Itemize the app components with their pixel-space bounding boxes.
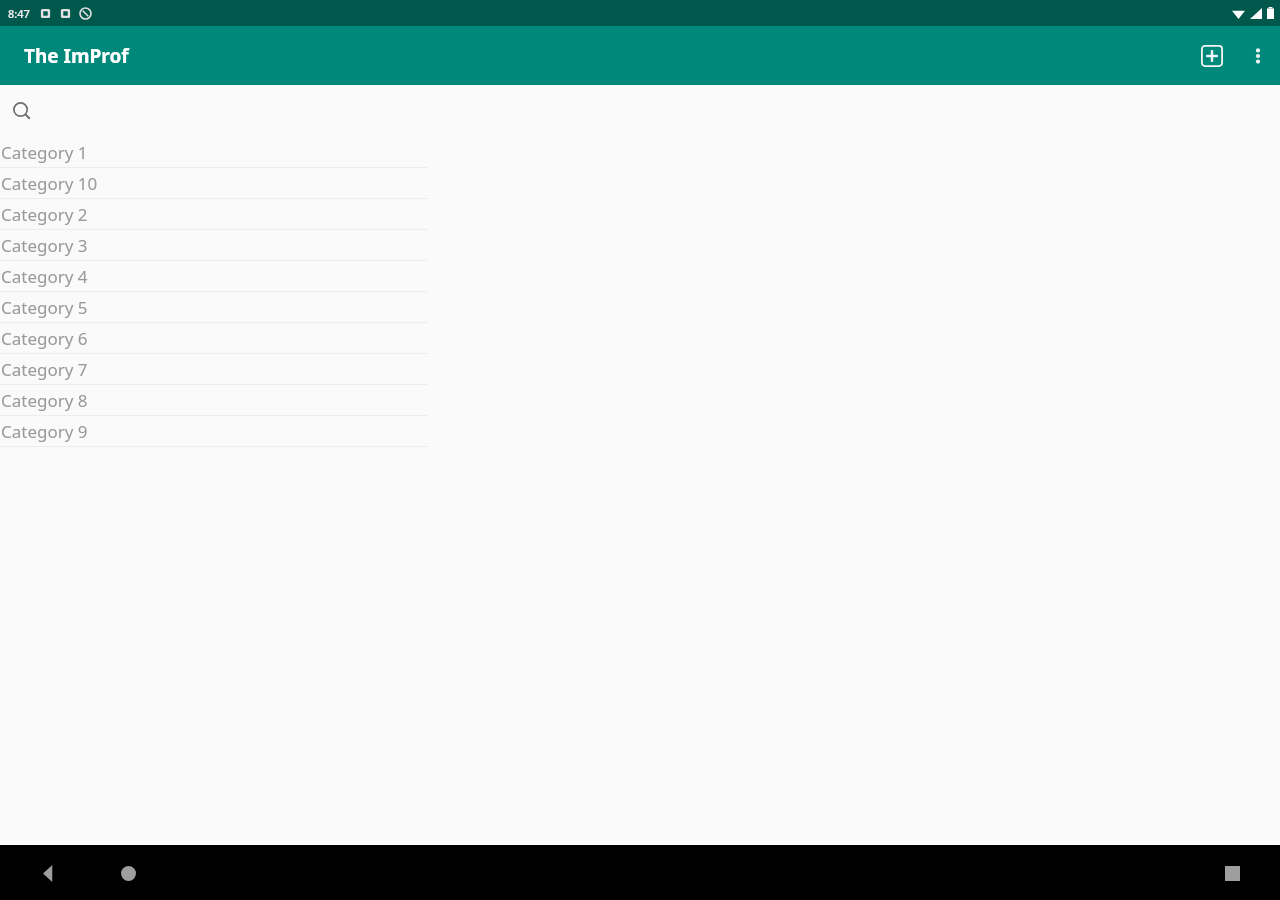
button[interactable]: Category 3	[0, 230, 1280, 261]
staticText: Category 4	[1, 265, 88, 288]
button[interactable]: Category 2	[0, 199, 1280, 230]
button[interactable]: Category 9	[0, 416, 1280, 447]
staticText: Category 8	[1, 389, 88, 412]
staticText: Category 3	[1, 234, 88, 257]
button[interactable]: More options	[1236, 34, 1280, 78]
staticText: Category 10	[1, 172, 98, 195]
button[interactable]: Back	[24, 849, 72, 897]
staticText: Category 2	[1, 203, 88, 226]
button[interactable]: Category 5	[0, 292, 1280, 323]
staticText: Category 1	[1, 141, 88, 164]
button[interactable]: Category 8	[0, 385, 1280, 416]
button[interactable]: Add category	[1188, 32, 1236, 80]
button[interactable]: Category 7	[0, 354, 1280, 385]
button[interactable]: Category 1	[0, 137, 1280, 168]
staticText: The ImProf	[24, 43, 129, 69]
button[interactable]: Search	[0, 85, 1280, 137]
staticText: Category 9	[1, 420, 88, 443]
staticText: 8:47	[8, 6, 30, 21]
button[interactable]: Category 4	[0, 261, 1280, 292]
staticText: Category 7	[1, 358, 88, 381]
staticText: Category 6	[1, 327, 88, 350]
button[interactable]: Category 6	[0, 323, 1280, 354]
staticText: Category 5	[1, 296, 88, 319]
button[interactable]: Category 10	[0, 168, 1280, 199]
button[interactable]: Recent apps	[1208, 849, 1256, 897]
button[interactable]: Home	[104, 849, 152, 897]
